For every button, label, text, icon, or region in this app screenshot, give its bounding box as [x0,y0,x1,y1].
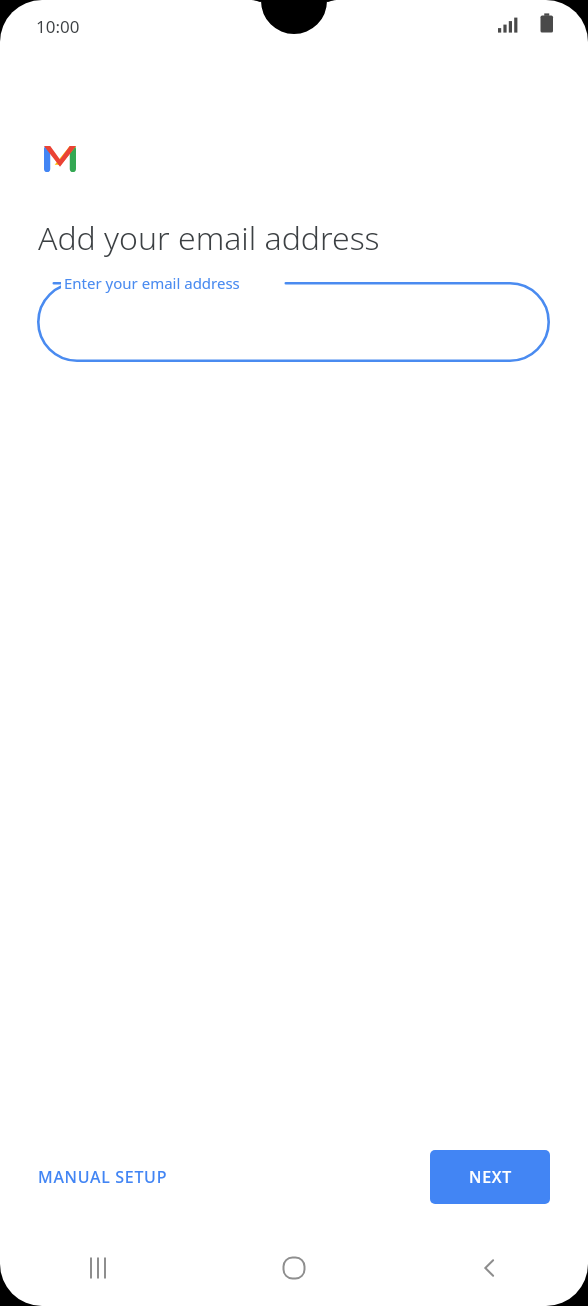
staticText: Enter your email address [64,273,240,293]
button[interactable]: Recent apps [0,1230,196,1306]
staticText: Add your email address [38,216,380,260]
staticText: MANUAL SETUP [38,1166,168,1188]
button[interactable]: Back [392,1230,588,1306]
staticText: NEXT [469,1166,512,1188]
staticText: 10:00 [36,15,80,38]
button[interactable]: MANUAL SETUP [22,1154,184,1200]
button[interactable]: Home [196,1230,392,1306]
button[interactable]: Enter your email address [37,282,550,362]
button[interactable]: NEXT [430,1150,550,1204]
